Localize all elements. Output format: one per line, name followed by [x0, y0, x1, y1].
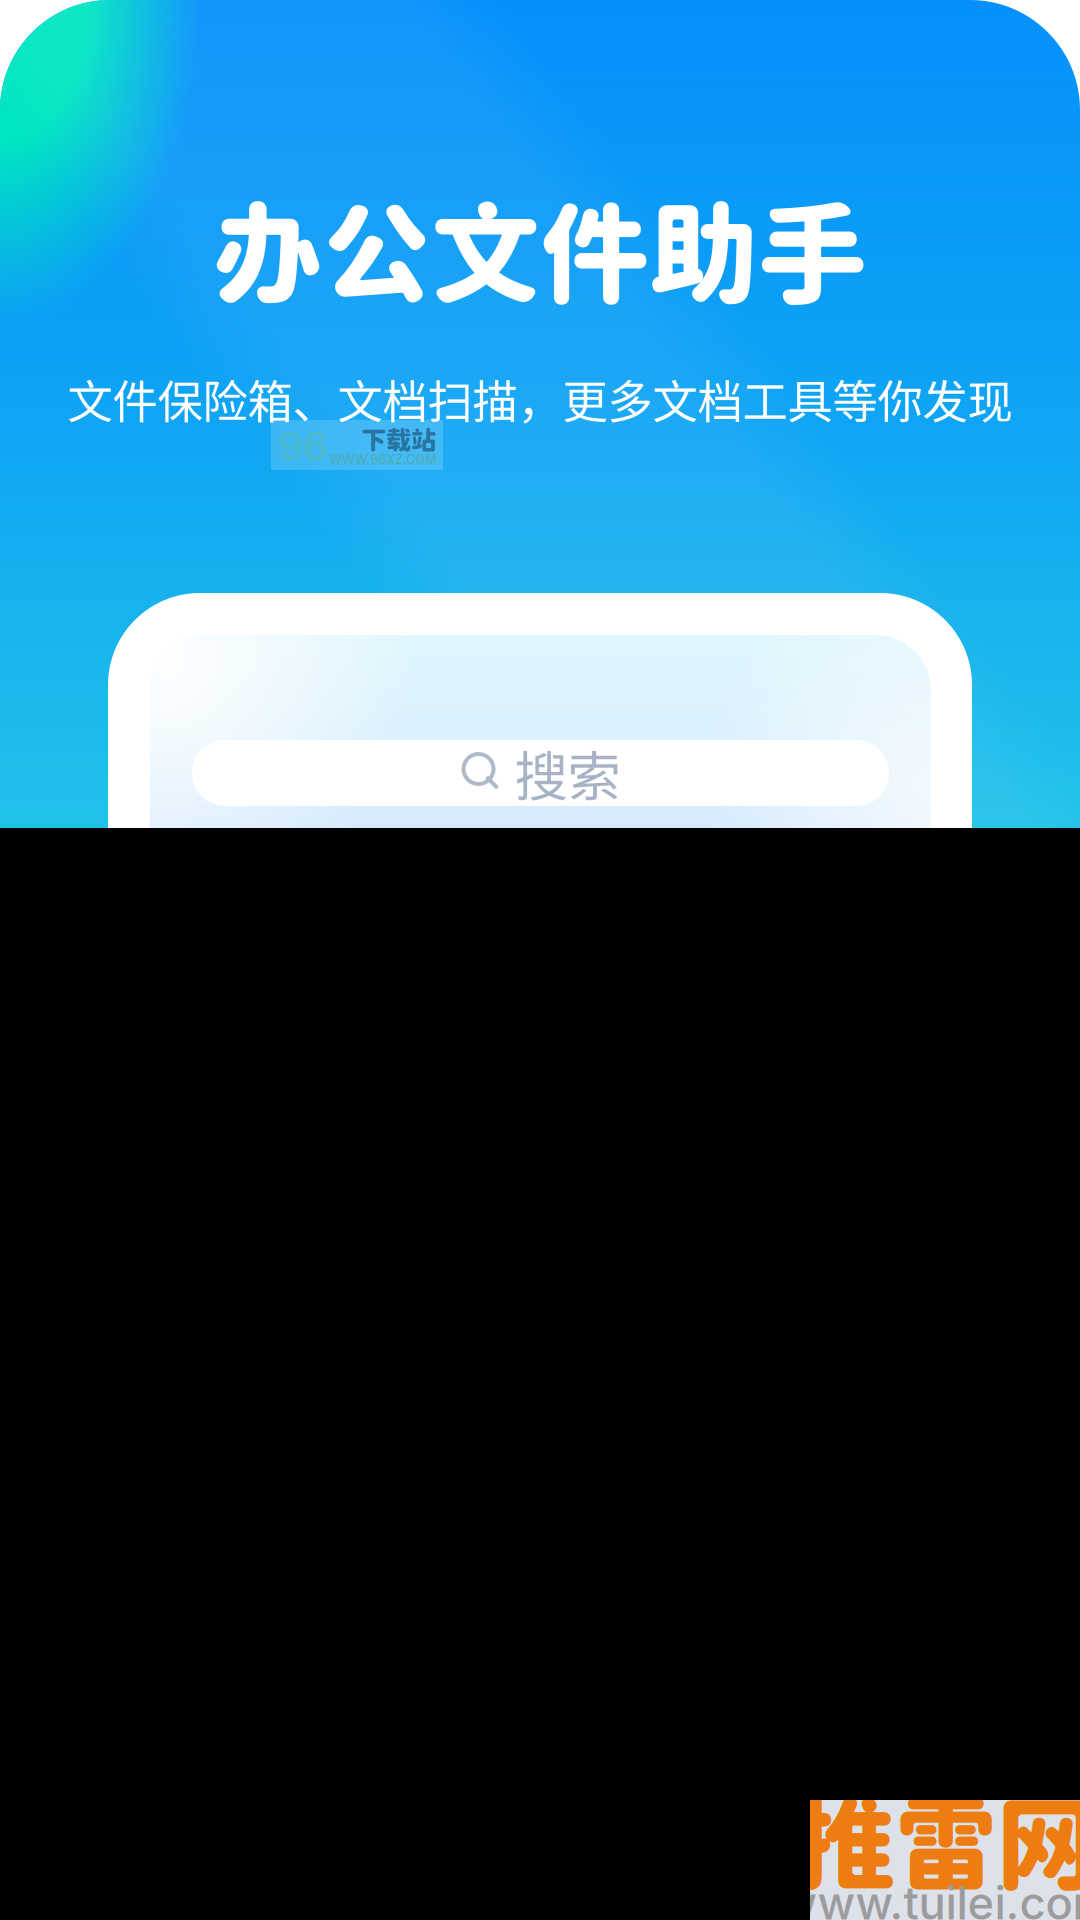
button[interactable]: 推雷网 www.tuilei.com [810, 1800, 1080, 1920]
staticText: 推雷网 [794, 1783, 1080, 1903]
staticText: www.tuilei.com [779, 1876, 1080, 1920]
staticText: 文件保险箱、文档扫描，更多文档工具等你发现 [67, 366, 1012, 432]
staticText: 办公文件助手 [213, 188, 867, 317]
staticText: 搜索 [514, 734, 620, 812]
staticText: 下载站 [361, 425, 436, 455]
staticText: WWW.96XZ.COM [329, 452, 436, 467]
staticText: 96 [278, 422, 328, 470]
